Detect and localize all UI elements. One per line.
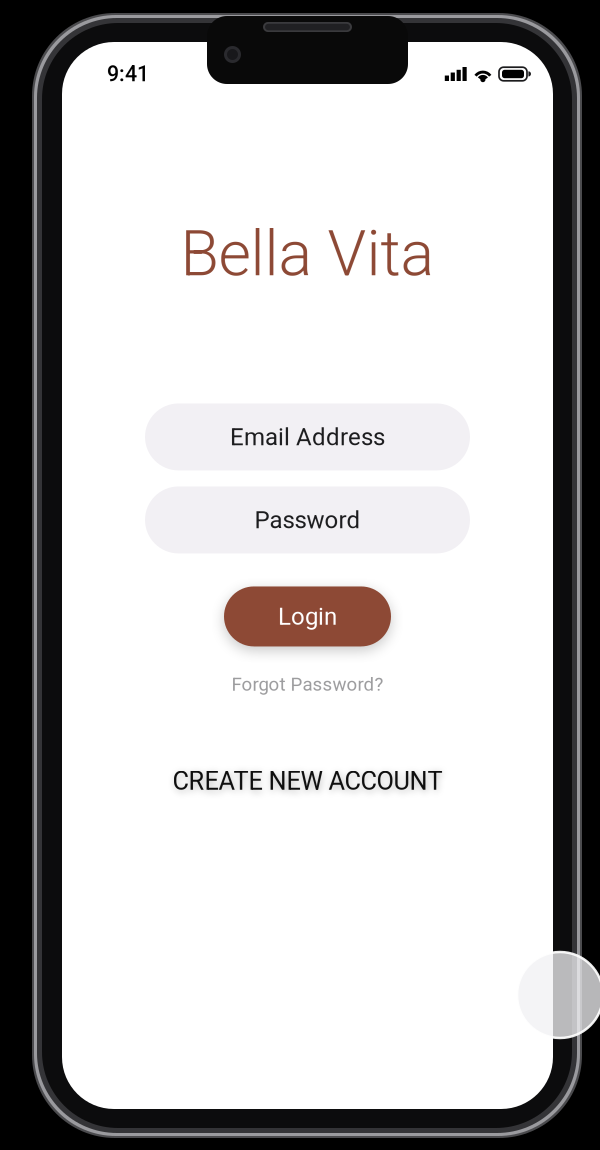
button[interactable]: CREATE NEW ACCOUNT — [172, 766, 442, 796]
button[interactable]: Forgot Password? — [231, 673, 383, 695]
button[interactable]: Login — [224, 586, 391, 646]
staticText: CREATE NEW ACCOUNT — [172, 766, 442, 796]
button[interactable]: Email Address — [145, 403, 470, 470]
staticText: Forgot Password? — [231, 673, 383, 695]
button[interactable]: Password — [145, 486, 470, 553]
staticText: Login — [278, 602, 337, 630]
staticText: Email Address — [230, 423, 385, 451]
staticText: Bella Vita — [180, 217, 434, 290]
staticText: 9:41 — [107, 61, 149, 86]
staticText: Password — [254, 506, 360, 534]
